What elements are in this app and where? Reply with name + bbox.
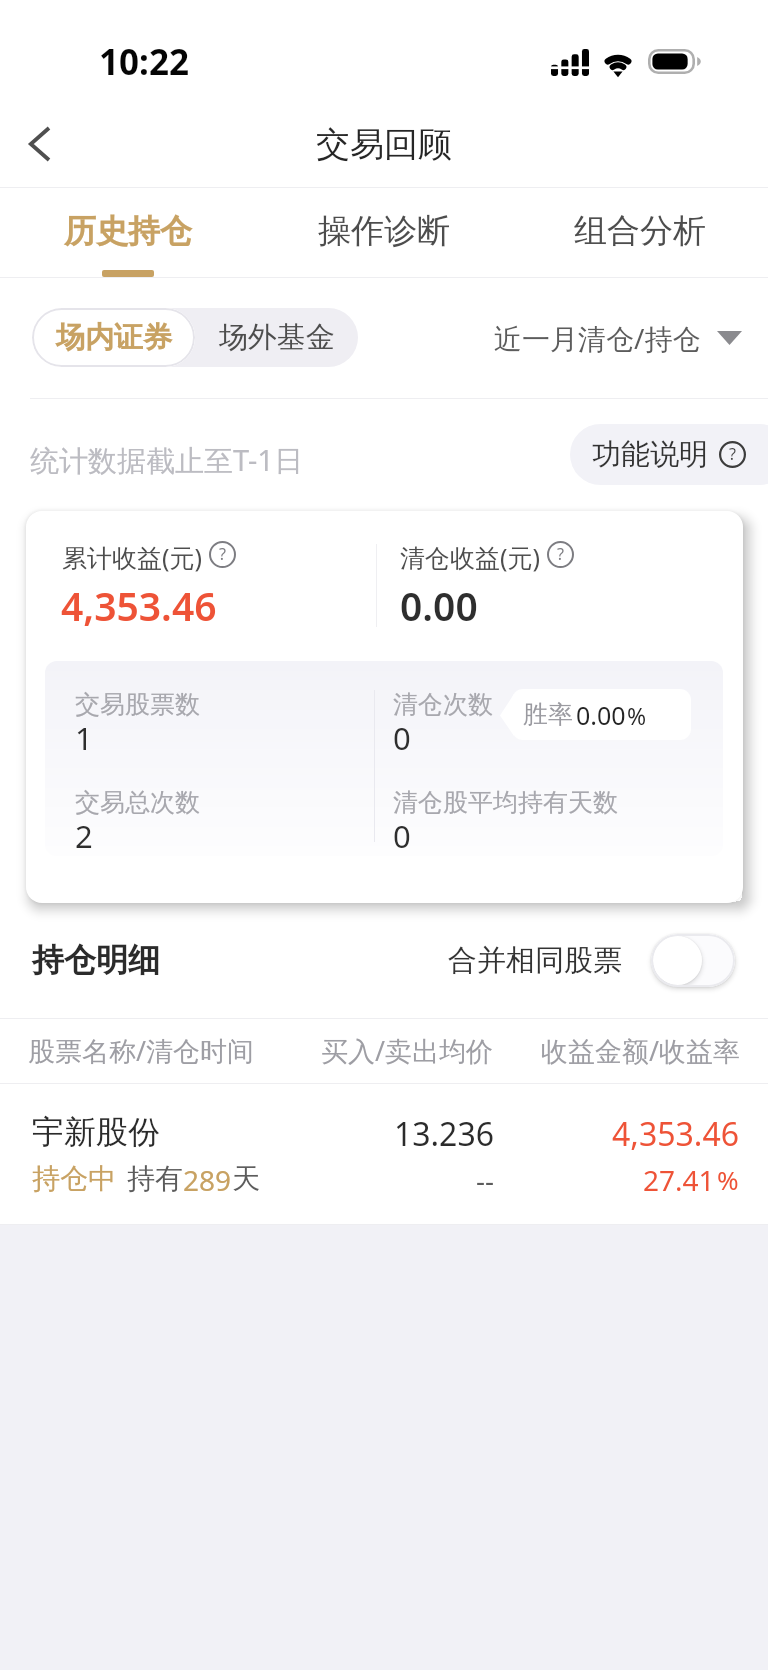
staticText: 交易股票数 [75,689,200,720]
staticText: 股票名称/清仓时间 [28,1032,255,1069]
button[interactable]: 操作诊断 [256,188,512,278]
staticText: 场内证券 [56,319,172,356]
staticText: 组合分析 [574,210,706,252]
button[interactable]: 组合分析 [512,188,768,278]
staticText: 4,353.46 [539,1112,739,1156]
staticText: 0 [393,717,411,759]
button[interactable]: 功能说明 [570,424,768,485]
staticText: 近一月清仓/持仓 [494,319,701,357]
button[interactable]: 宇新股份 [0,1083,768,1225]
button[interactable]: 历史持仓 [0,188,256,278]
button[interactable]: Back [0,100,78,188]
button[interactable]: 近一月清仓/持仓 [494,308,742,367]
staticText: 清仓收益(元) [400,540,541,574]
staticText: 统计数据截止至T-1日 [30,440,303,480]
staticText: 0 [393,815,411,857]
button[interactable]: 场外基金 [195,308,358,367]
staticText: 累计收益(元) [62,540,203,574]
staticText: 买入/卖出均价 [321,1032,494,1069]
staticText: 2 [75,815,93,857]
staticText: 持仓明细 [32,940,160,980]
staticText: 1 [75,717,93,759]
staticText: 操作诊断 [318,210,450,252]
staticText: 场外基金 [219,319,335,356]
staticText: ? [557,543,565,565]
staticText: 胜率 [523,699,573,730]
staticText: % [627,700,647,731]
button[interactable]: Merge same stocks toggle [651,934,735,987]
staticText: 13.236 [294,1112,494,1156]
staticText: 交易回顾 [316,123,452,166]
staticText: 0.00 [576,698,626,732]
staticText: 289 [183,1161,232,1199]
staticText: 持有 [127,1161,183,1196]
staticText: 10:22 [99,38,189,86]
staticText: 清仓股平均持有天数 [393,787,618,818]
staticText: 历史持仓 [64,211,192,251]
button[interactable]: 场内证券 [32,308,195,367]
staticText: 0.00 [400,579,478,632]
staticText: ? [219,543,227,565]
staticText: ? [729,443,737,465]
staticText: 功能说明 [592,436,708,473]
staticText: 清仓次数 [393,689,493,720]
staticText: 交易总次数 [75,787,200,818]
staticText: % [717,1162,739,1197]
staticText: 合并相同股票 [448,942,622,979]
staticText: 27.41 [643,1161,715,1199]
staticText: 宇新股份 [32,1112,160,1152]
staticText: 收益金额/收益率 [541,1032,741,1069]
staticText: 持仓中 [32,1161,116,1196]
staticText: -- [294,1161,494,1199]
staticText: 天 [232,1161,260,1196]
staticText: 4,353.46 [61,579,217,632]
